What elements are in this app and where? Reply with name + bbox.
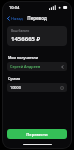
button[interactable]: Назад [3, 15, 27, 22]
staticText: 1456665 ₽ [11, 35, 41, 43]
staticText: Ваш баланс [11, 29, 30, 33]
other: Expand recipient list [61, 65, 64, 69]
button[interactable]: Сергей Андреев [7, 62, 67, 71]
staticText: Мои получатели [8, 55, 39, 60]
staticText: Назад [11, 16, 23, 21]
button[interactable]: Перевести [7, 129, 67, 139]
button[interactable]: 10000 [7, 83, 67, 92]
button[interactable]: Ваш баланс [7, 26, 67, 46]
staticText: Перевод [27, 15, 47, 21]
staticText: Перевести [26, 132, 48, 137]
staticText: 10:04 [9, 5, 20, 10]
button[interactable]: Clear amount [60, 86, 64, 90]
staticText: Сумма [8, 76, 21, 81]
staticText: Сергей Андреев [10, 64, 41, 69]
staticText: 10000 [10, 85, 21, 90]
